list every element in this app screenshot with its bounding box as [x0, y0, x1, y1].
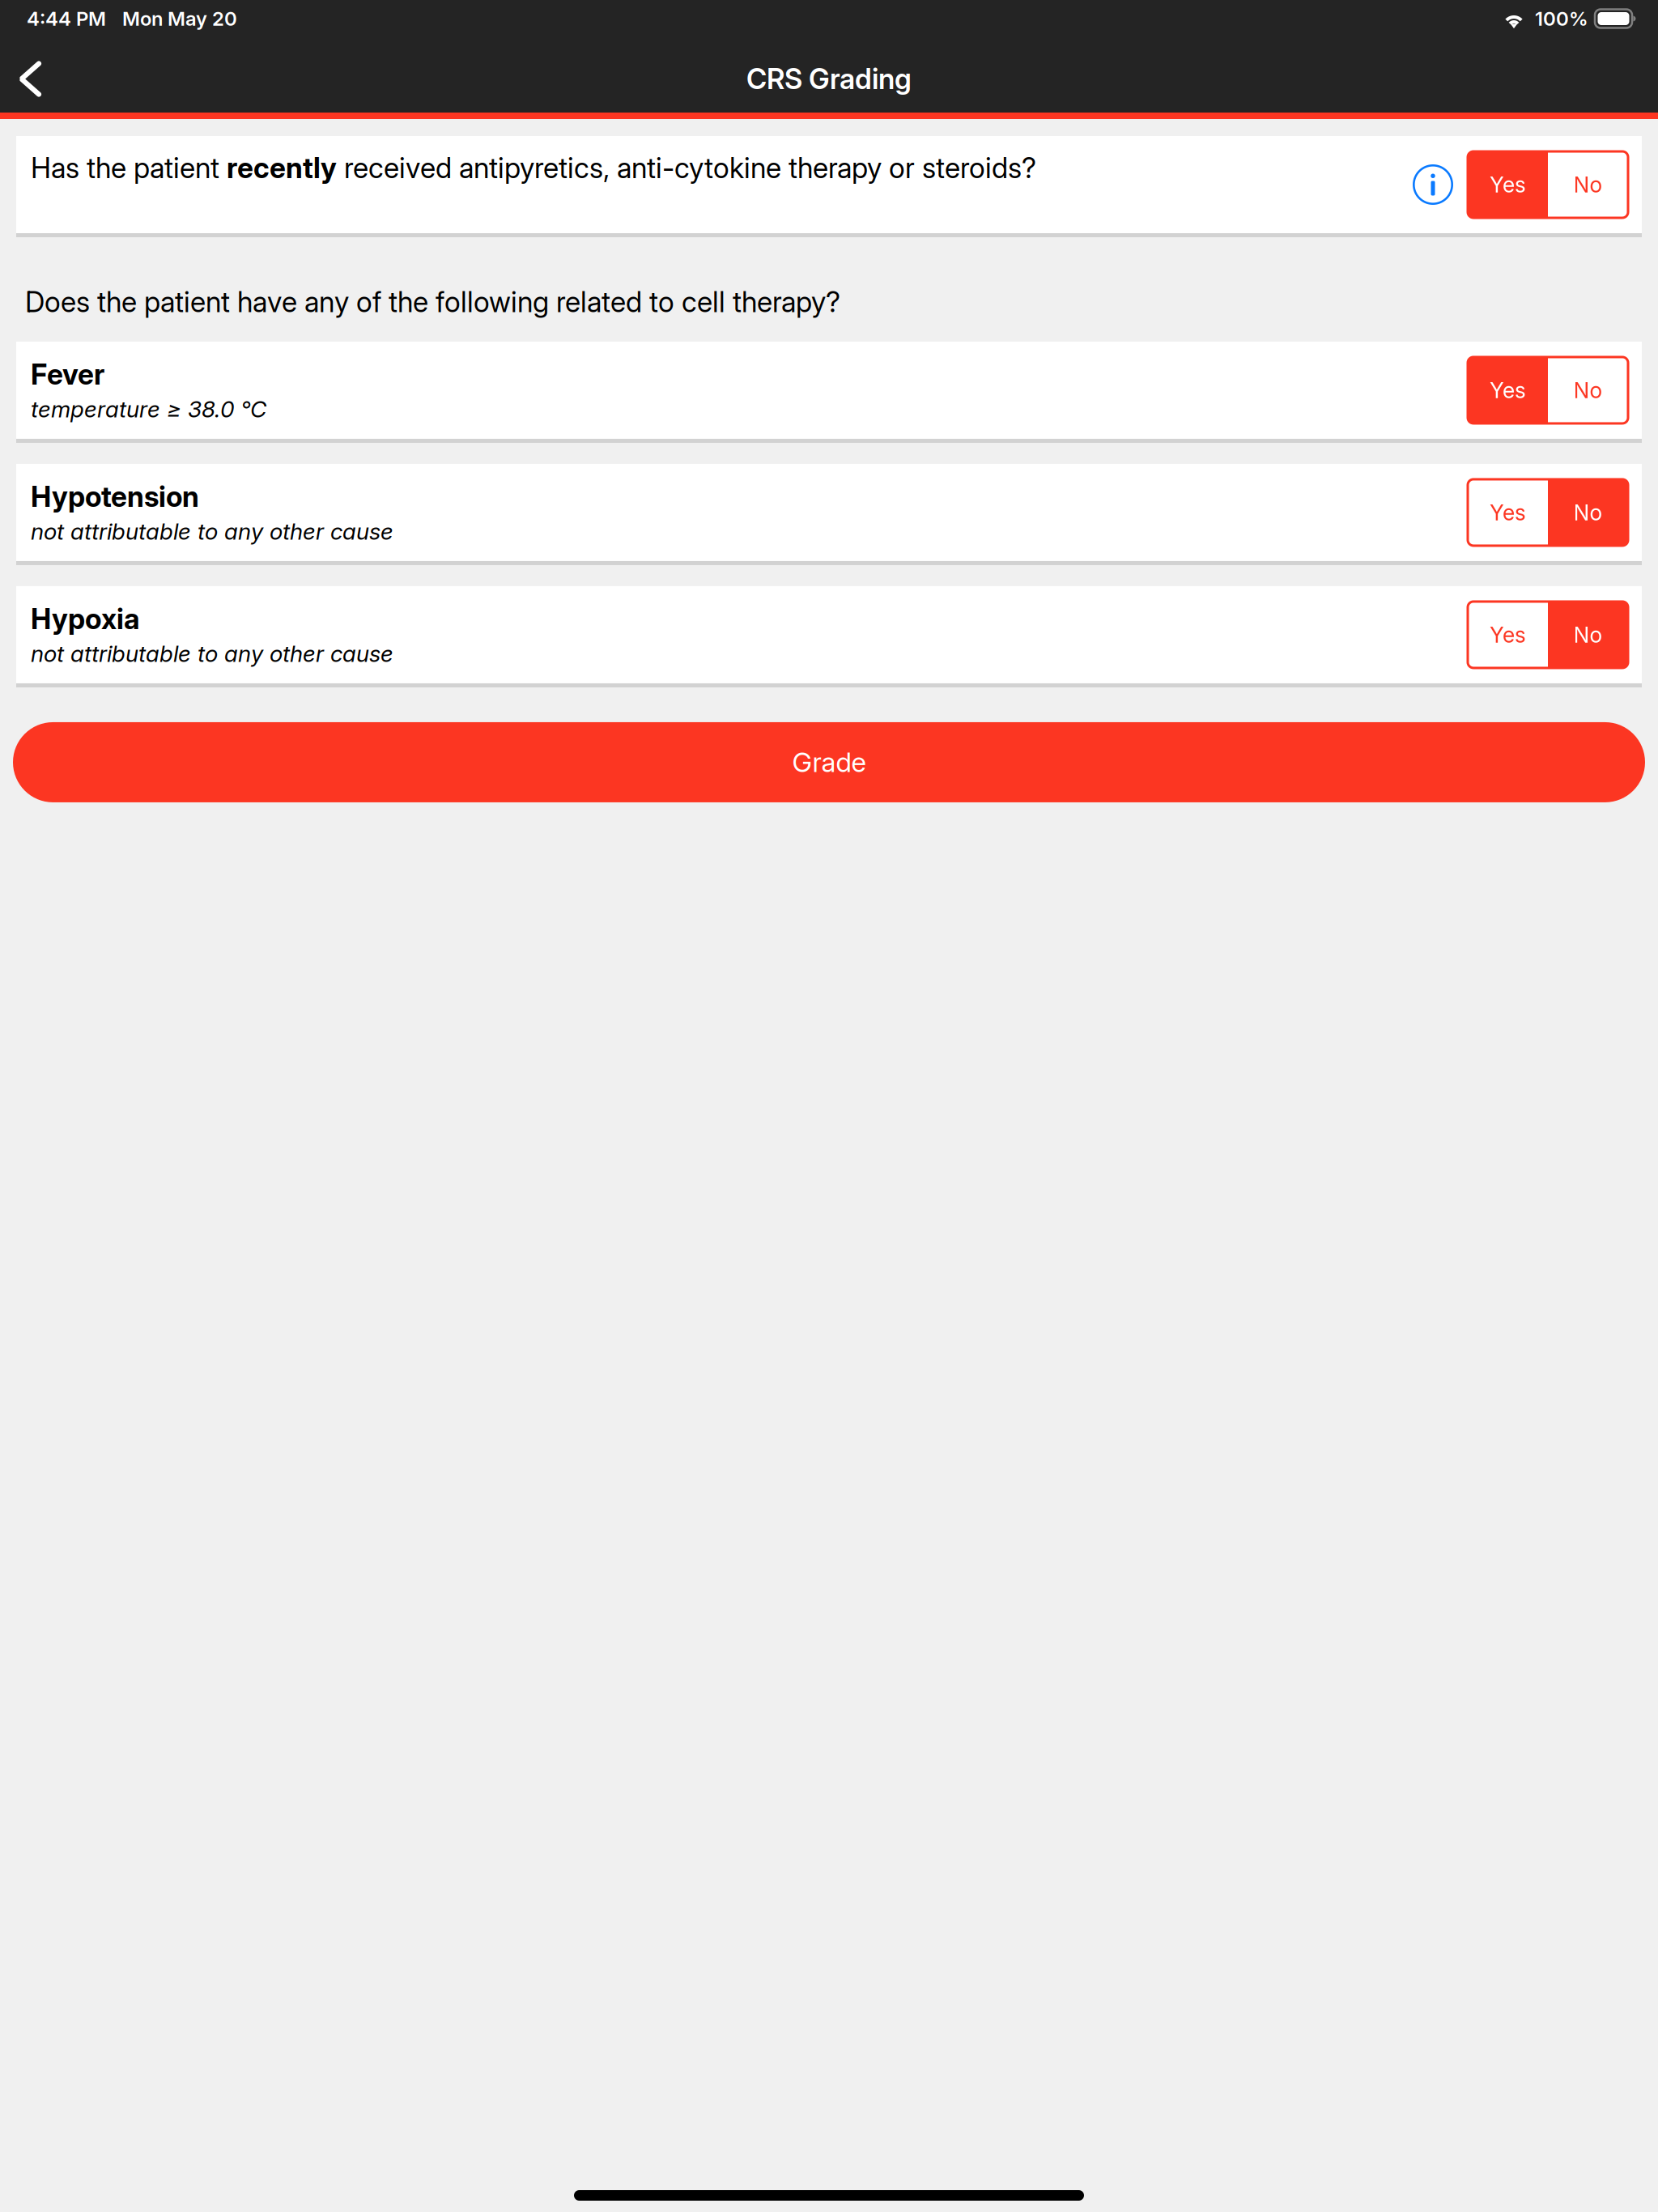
staticText: Fever	[31, 357, 104, 391]
staticText: No	[1573, 499, 1603, 526]
button[interactable]: No	[1548, 601, 1628, 668]
staticText: No	[1573, 377, 1603, 403]
staticText: Hypotension	[31, 480, 199, 514]
staticText: CRS Grading	[746, 62, 912, 96]
staticText: Yes	[1490, 172, 1526, 198]
staticText: Yes	[1490, 499, 1526, 526]
staticText: Hypoxia	[31, 602, 139, 636]
staticText: Yes	[1490, 377, 1526, 403]
staticText: No	[1573, 622, 1603, 648]
staticText: not attributable to any other cause	[31, 640, 393, 667]
staticText: No	[1573, 172, 1603, 198]
staticText: Yes	[1490, 622, 1526, 648]
button[interactable]: No	[1548, 151, 1628, 218]
button[interactable]: Yes	[1468, 151, 1548, 218]
button[interactable]: Grade	[13, 722, 1645, 802]
staticText: 100%	[1535, 7, 1588, 30]
staticText: temperature ≥ 38.0 °C	[31, 396, 266, 423]
button[interactable]: Yes	[1468, 357, 1548, 423]
staticText: Mon May 20	[122, 7, 237, 30]
button[interactable]: No	[1548, 357, 1628, 423]
staticText: Has the patient recently received antipy…	[31, 151, 1036, 185]
staticText: not attributable to any other cause	[31, 518, 393, 545]
staticText: 4:44 PM	[27, 7, 106, 30]
button[interactable]: Yes	[1468, 601, 1548, 668]
button[interactable]: More information	[1413, 164, 1453, 205]
button[interactable]: Back	[0, 56, 91, 102]
staticText: Does the patient have any of the followi…	[25, 285, 840, 319]
button[interactable]: No	[1548, 479, 1628, 546]
button[interactable]: Yes	[1468, 479, 1548, 546]
staticText: Grade	[792, 746, 866, 779]
